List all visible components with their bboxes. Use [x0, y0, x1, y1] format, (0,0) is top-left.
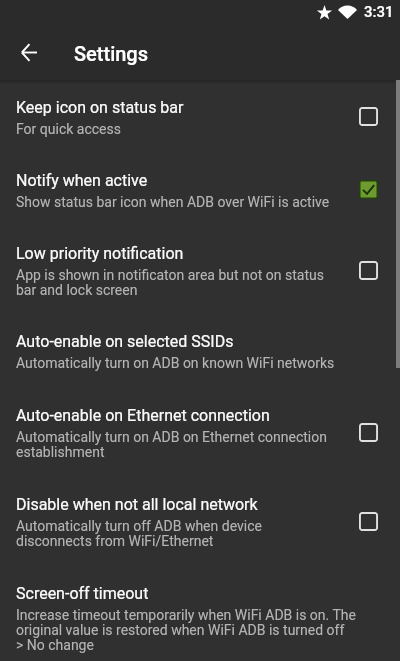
- button[interactable]: Low priority notification: [0, 228, 400, 316]
- button[interactable]: Auto-enable on selected SSIDs: [0, 316, 400, 390]
- staticText: Low priority notification: [16, 244, 184, 263]
- button[interactable]: Auto-enable on Ethernet connection: [0, 390, 400, 479]
- staticText: 3:31: [364, 3, 394, 21]
- staticText: Show status bar icon when ADB over WiFi …: [16, 194, 330, 210]
- staticText: Automatically turn on ADB on known WiFi …: [16, 355, 335, 371]
- staticText: Increase timeout temporarily when WiFi A…: [16, 607, 384, 653]
- staticText: App is shown in notificaton area but not…: [16, 267, 330, 298]
- staticText: Auto-enable on Ethernet connection: [16, 406, 270, 425]
- staticText: Auto-enable on selected SSIDs: [16, 332, 234, 351]
- staticText: Notify when active: [16, 171, 148, 190]
- button[interactable]: Checked option: [346, 167, 390, 211]
- button[interactable]: Unchecked option: [346, 499, 390, 543]
- button[interactable]: Notify when active: [0, 155, 400, 228]
- staticText: Keep icon on status bar: [16, 98, 184, 117]
- staticText: Settings: [74, 42, 149, 65]
- button[interactable]: Unchecked option: [346, 248, 390, 292]
- button[interactable]: Screen-off timeout: [0, 568, 400, 661]
- staticText: Screen-off timeout: [16, 584, 149, 603]
- button[interactable]: Disable when not all local network: [0, 479, 400, 568]
- staticText: Disable when not all local network: [16, 495, 258, 514]
- button[interactable]: Back: [9, 32, 49, 72]
- staticText: Automatically turn on ADB on Ethernet co…: [16, 429, 330, 460]
- staticText: For quick access: [16, 121, 121, 137]
- button[interactable]: Unchecked option: [346, 94, 390, 138]
- button[interactable]: Keep icon on status bar: [0, 80, 400, 155]
- staticText: Automatically turn off ADB when device d…: [16, 518, 330, 549]
- button[interactable]: Unchecked option: [346, 410, 390, 454]
